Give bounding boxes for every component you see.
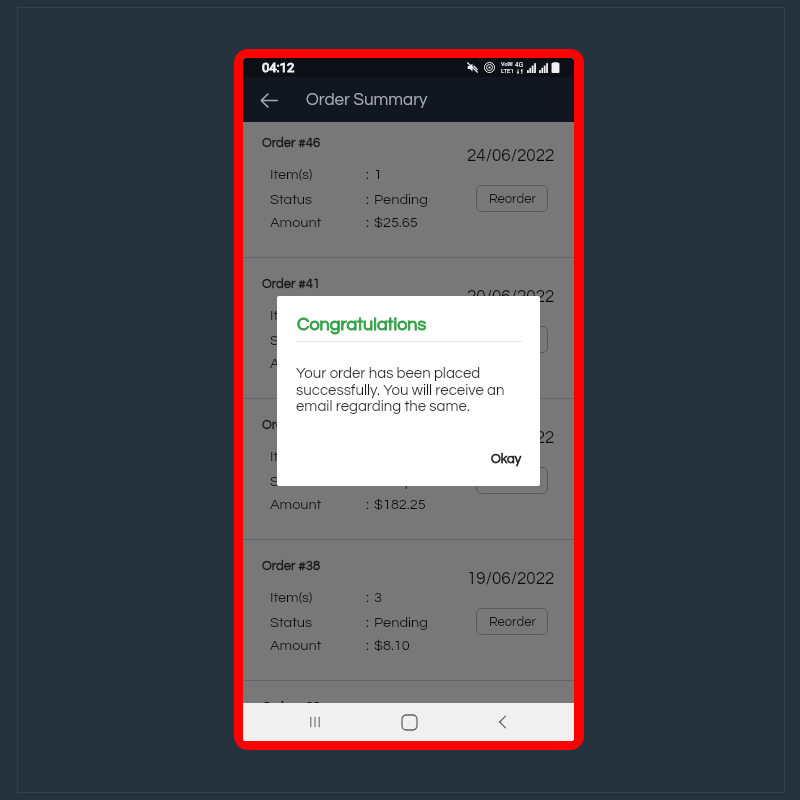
staticText: Your order has been placed successfully.… — [296, 366, 508, 414]
staticText: Okay — [491, 452, 522, 465]
staticText: Order #46 — [262, 136, 321, 149]
staticText: Congratulations — [297, 315, 427, 334]
staticText: 3 — [374, 590, 382, 605]
button[interactable]: Order #40 — [243, 399, 574, 539]
button[interactable]: Reorder — [476, 608, 548, 635]
staticText: Order #40 — [262, 418, 321, 431]
staticText: 1 — [374, 167, 382, 182]
staticText: : — [366, 333, 369, 348]
staticText: Amount — [270, 215, 322, 230]
staticText: Congratulations — [297, 315, 427, 334]
staticText: : — [366, 215, 369, 230]
button[interactable]: Reorder — [476, 326, 548, 353]
staticText: : — [366, 167, 369, 182]
staticText: Item(s) — [270, 308, 313, 323]
staticText: Order #41 — [262, 277, 321, 290]
staticText: Order #38 — [262, 559, 321, 572]
staticText: VoWi — [501, 61, 513, 67]
staticText: Order #46 — [262, 136, 321, 149]
button[interactable]: Back — [253, 84, 285, 116]
staticText: Complete — [374, 474, 438, 489]
button[interactable]: Home — [387, 703, 431, 741]
staticText: $8.10 — [374, 638, 410, 653]
staticText: Reorder — [489, 615, 536, 628]
staticText: Item(s) — [270, 449, 313, 464]
staticText: 20/06/2022 — [467, 429, 555, 447]
button[interactable]: Recent apps — [293, 703, 337, 741]
staticText: 04:12 — [262, 60, 295, 75]
staticText: : — [366, 615, 369, 630]
staticText: 2 — [374, 308, 382, 323]
staticText: Reorder — [489, 192, 536, 205]
button[interactable]: Order #38 — [243, 540, 574, 680]
staticText: 04:12 — [262, 60, 295, 75]
button[interactable]: Okay — [491, 452, 522, 465]
staticText: 19/06/2022 — [467, 570, 555, 588]
staticText: : — [366, 638, 369, 653]
staticText: : — [366, 497, 369, 512]
staticText: : — [366, 474, 369, 489]
staticText: Status — [270, 192, 313, 207]
button[interactable]: Order #46 — [243, 117, 574, 257]
staticText: Item(s) — [270, 167, 313, 182]
button[interactable]: Reorder — [476, 185, 548, 212]
staticText: $30.00 — [374, 356, 418, 371]
button[interactable]: Order #41 — [243, 258, 574, 398]
staticText: Order #33 — [262, 700, 321, 713]
staticText: 24/06/2022 — [467, 147, 555, 165]
staticText: Pending — [374, 192, 428, 207]
staticText: LTE1 — [501, 67, 513, 74]
staticText: Okay — [491, 452, 522, 465]
staticText: Order #33 — [262, 700, 321, 713]
staticText: $182.25 — [374, 497, 426, 512]
button[interactable]: Reorder — [476, 467, 548, 494]
staticText: Order #38 — [262, 559, 321, 572]
staticText: $25.65 — [374, 215, 418, 230]
staticText: Order Summary — [306, 91, 428, 109]
staticText: Status — [270, 615, 313, 630]
staticText: Reorder — [489, 333, 536, 346]
staticText: : — [366, 590, 369, 605]
staticText: Status — [270, 333, 313, 348]
staticText: Amount — [270, 356, 322, 371]
staticText: 20/06/2022 — [467, 288, 555, 306]
staticText: Amount — [270, 497, 322, 512]
staticText: Order #40 — [262, 418, 321, 431]
staticText: Item(s) — [270, 590, 313, 605]
staticText: 18/06/2022 — [467, 711, 555, 728]
staticText: : — [366, 192, 369, 207]
staticText: Status — [270, 474, 313, 489]
staticText: Complete — [374, 333, 438, 348]
button[interactable]: Back — [481, 703, 525, 741]
staticText: Amount — [270, 638, 322, 653]
staticText: Order #41 — [262, 277, 321, 290]
staticText: 4G — [515, 61, 524, 69]
staticText: Pending — [374, 615, 428, 630]
staticText: Reorder — [489, 474, 536, 487]
